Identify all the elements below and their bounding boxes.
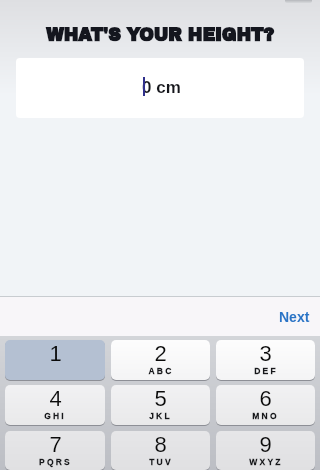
staticText: 5 xyxy=(154,386,167,411)
staticText: MNO xyxy=(252,411,279,420)
button[interactable]: 2 xyxy=(111,340,210,380)
button[interactable]: 8 xyxy=(111,431,210,470)
staticText: WHAT'S YOUR HEIGHT? xyxy=(0,26,320,45)
button[interactable]: 9 xyxy=(216,431,315,470)
staticText: DEF xyxy=(254,366,278,375)
staticText: GHI xyxy=(44,411,66,420)
staticText: PQRS xyxy=(39,457,72,466)
staticText: JKL xyxy=(149,411,172,420)
button[interactable]: 5 xyxy=(111,385,210,425)
staticText: WXYZ xyxy=(249,457,283,466)
staticText: 6 xyxy=(259,386,272,411)
button[interactable]: 0 cm xyxy=(16,58,304,118)
button[interactable]: 7 xyxy=(5,431,105,470)
staticText: 2 xyxy=(154,341,167,366)
button[interactable]: 3 xyxy=(216,340,315,380)
staticText: 9 xyxy=(259,432,272,457)
staticText: 0 cm xyxy=(142,78,181,97)
staticText: 1 xyxy=(49,341,62,366)
staticText: 8 xyxy=(154,432,167,457)
staticText: 7 xyxy=(49,432,62,457)
staticText: ABC xyxy=(148,366,174,375)
staticText: 3 xyxy=(259,341,272,366)
button[interactable]: Next xyxy=(269,301,320,333)
button[interactable]: 4 xyxy=(5,385,105,425)
button[interactable]: 1 xyxy=(5,340,105,380)
staticText: 4 xyxy=(49,386,62,411)
button[interactable]: 6 xyxy=(216,385,315,425)
staticText: Next xyxy=(279,309,310,325)
staticText: TUV xyxy=(149,457,173,466)
